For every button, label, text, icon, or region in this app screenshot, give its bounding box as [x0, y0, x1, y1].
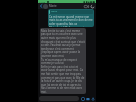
- button[interactable]: Camera: [85, 96, 90, 101]
- button[interactable]: Back: [38, 3, 43, 9]
- staticText: Marie: [51, 10, 57, 13]
- button[interactable]: Video call: [83, 3, 89, 9]
- button[interactable]: Mais limite tu sais c'est meme pas que t…: [40, 28, 86, 94]
- staticText: Ca m'enerve quand meme non mais tu as vr…: [49, 15, 93, 27]
- button[interactable]: Marie: [48, 9, 94, 27]
- button[interactable]: Voice message: [90, 96, 95, 101]
- staticText: Marie: [49, 4, 57, 8]
- staticText: 14:09: [39, 0, 46, 3]
- button[interactable]: Emoji: [80, 96, 85, 101]
- staticText: Mais limite tu sais c'est meme pas que t…: [41, 29, 85, 94]
- button[interactable]: Message: [39, 96, 79, 101]
- button[interactable]: Call: [89, 3, 95, 9]
